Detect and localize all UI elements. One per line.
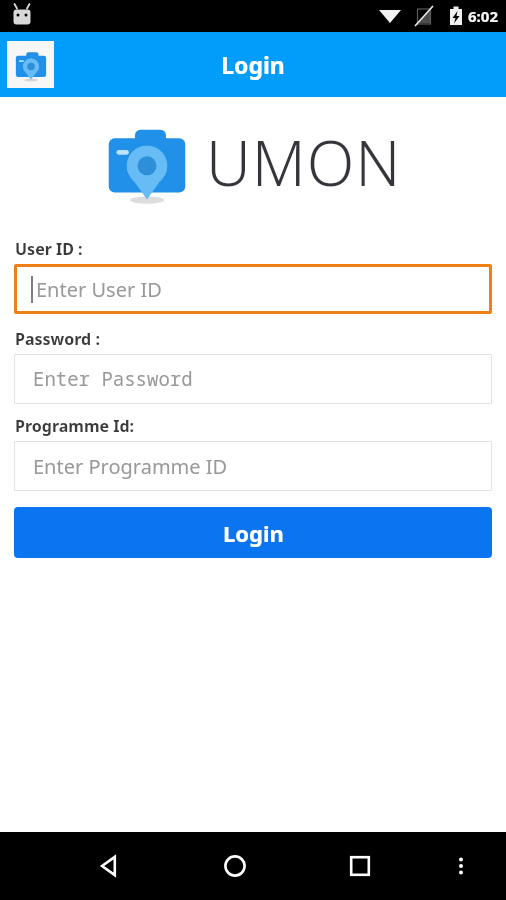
button[interactable]: Enter User ID xyxy=(14,264,492,314)
button[interactable]: Login xyxy=(14,507,492,558)
button[interactable]: App icon xyxy=(7,41,54,88)
button[interactable]: Home xyxy=(209,840,261,892)
button[interactable]: Recent apps xyxy=(334,840,386,892)
button[interactable]: Back xyxy=(84,840,136,892)
staticText: Password : xyxy=(15,328,100,350)
staticText: Programme Id: xyxy=(15,415,135,437)
staticText: 6:02 xyxy=(468,6,498,26)
staticText: UMON xyxy=(206,120,402,204)
button[interactable]: Enter Password xyxy=(14,354,492,404)
staticText: Login xyxy=(221,49,285,80)
staticText: Enter Password xyxy=(33,366,193,392)
staticText: Enter User ID xyxy=(36,276,162,303)
button[interactable]: Enter Programme ID xyxy=(14,441,492,491)
staticText: Enter Programme ID xyxy=(33,453,228,480)
staticText: User ID : xyxy=(15,238,83,260)
staticText: Login xyxy=(223,518,284,548)
button[interactable]: More options xyxy=(438,843,484,889)
